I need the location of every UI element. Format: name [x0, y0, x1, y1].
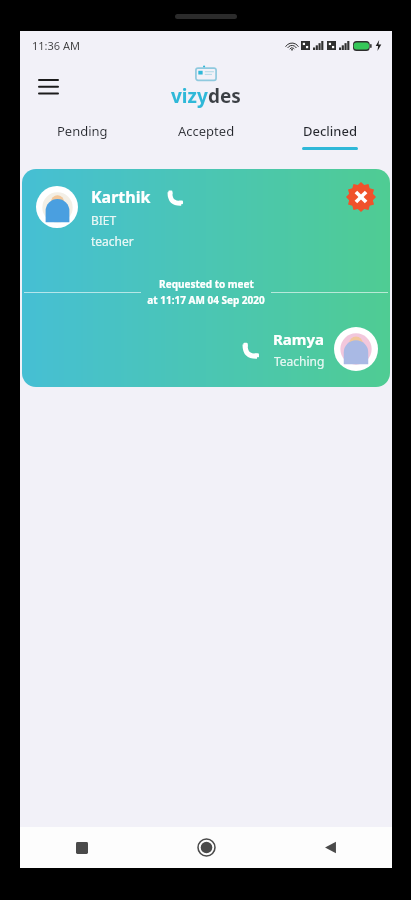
button[interactable]: Pending — [20, 115, 144, 157]
staticText: Accepted — [178, 122, 235, 140]
button[interactable]: Declined — [346, 182, 376, 212]
staticText: Pending — [57, 122, 108, 140]
staticText: BIET — [91, 212, 117, 228]
button[interactable]: Call Karthik — [165, 186, 187, 208]
button[interactable]: Recent apps — [20, 827, 144, 868]
staticText: Ramya — [273, 329, 325, 349]
button[interactable]: Call Ramya — [239, 337, 263, 361]
staticText: vizy — [171, 83, 208, 109]
button[interactable]: Declined — [268, 115, 392, 157]
staticText: at 11:17 AM 04 Sep 2020 — [147, 293, 265, 307]
button[interactable]: Open navigation menu — [26, 65, 70, 109]
staticText: Teaching — [274, 353, 325, 369]
staticText: des — [208, 83, 241, 109]
button[interactable]: Home — [144, 827, 268, 868]
staticText: teacher — [91, 233, 134, 249]
button[interactable]: Back — [268, 827, 392, 868]
staticText: Requested to meet — [159, 277, 254, 291]
button[interactable]: Accepted — [144, 115, 268, 157]
staticText: Declined — [303, 122, 358, 140]
staticText: Karthik — [91, 186, 151, 208]
staticText: 11:36 AM — [32, 38, 80, 53]
button[interactable]: Karthik — [22, 169, 390, 387]
